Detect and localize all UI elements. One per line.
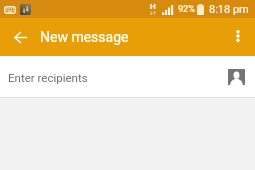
button[interactable]: Select contacts: [228, 69, 245, 85]
staticText: H: [150, 2, 156, 11]
staticText: Enter recipients: [8, 71, 88, 84]
button[interactable]: Navigate up: [0, 18, 40, 56]
staticText: 92%: [178, 4, 195, 15]
staticText: 8:18 pm: [209, 3, 249, 16]
staticText: New message: [40, 29, 129, 45]
button[interactable]: More options: [221, 18, 255, 56]
